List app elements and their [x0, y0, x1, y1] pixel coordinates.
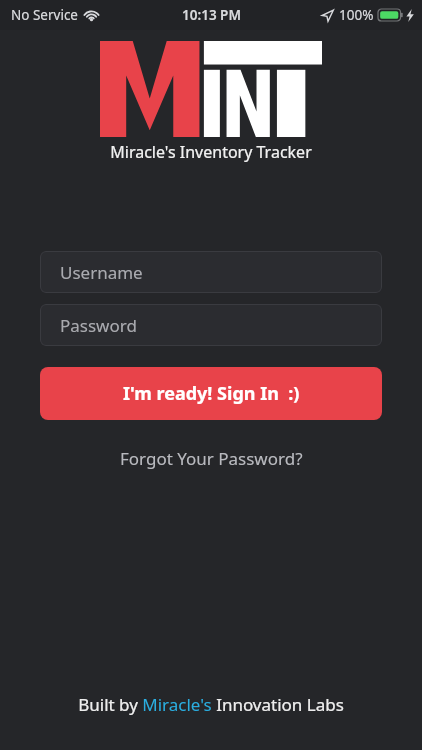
- button[interactable]: Built by Miracle's Innovation Labs: [68, 689, 354, 720]
- staticText: I'm ready! Sign In :): [123, 381, 300, 406]
- staticText: Username: [60, 261, 143, 284]
- staticText: No Service: [11, 6, 78, 24]
- staticText: 100%: [339, 6, 374, 24]
- staticText: Miracle's Inventory Tracker: [110, 141, 312, 163]
- button[interactable]: Username: [40, 251, 382, 293]
- staticText: Built by Miracle's Innovation Labs: [78, 693, 344, 716]
- staticText: 10:13 PM: [182, 6, 241, 24]
- staticText: Password: [60, 314, 137, 337]
- button[interactable]: I'm ready! Sign In :): [40, 367, 382, 420]
- button[interactable]: Forgot Your Password?: [110, 442, 313, 475]
- button[interactable]: Password: [40, 304, 382, 346]
- staticText: Forgot Your Password?: [120, 447, 303, 470]
